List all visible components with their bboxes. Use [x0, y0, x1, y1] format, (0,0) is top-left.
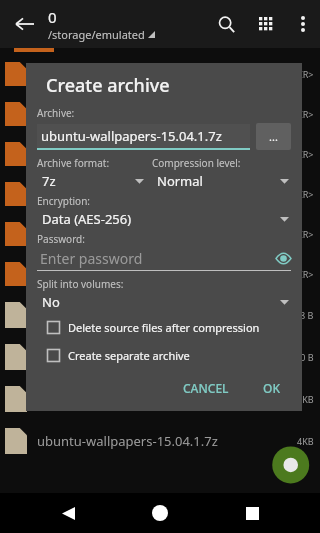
staticText: ubuntu-wallpapers-15.0.7z: [37, 390, 200, 408]
staticText: ubuntu-wallpapers-15.04.1.7z: [37, 432, 218, 450]
staticText: Normal: [157, 172, 203, 190]
staticText: Encryption:: [37, 194, 91, 208]
staticText: ...: [269, 129, 278, 144]
other: Show password: [276, 253, 291, 264]
button[interactable]: Create separate archive: [37, 341, 291, 369]
staticText: Password:: [37, 232, 85, 246]
button[interactable]: Search: [206, 4, 246, 44]
staticText: Delete source files after compression: [68, 320, 260, 335]
button[interactable]: <DIR>: [0, 134, 320, 174]
button[interactable]: <DIR>: [0, 174, 320, 214]
staticText: Archive format:: [37, 156, 110, 170]
staticText: 0: [48, 7, 57, 27]
staticText: Create archive: [46, 73, 170, 98]
button[interactable]: Compression level:: [152, 156, 291, 190]
button[interactable]: ubuntu-wallpapers-15.04.1.7z: [0, 420, 320, 462]
button[interactable]: More options: [286, 7, 320, 41]
staticText: CANCEL: [183, 380, 229, 396]
button[interactable]: Grid view: [246, 4, 286, 44]
button[interactable]: <DIR>: [0, 54, 320, 94]
staticText: <DIR>: [288, 268, 314, 280]
staticText: Archive:: [37, 106, 75, 120]
staticText: 8 B: [300, 309, 314, 321]
staticText: <DIR>: [288, 228, 314, 240]
button[interactable]: ubuntu-wallpapers-15.0.7z: [0, 378, 320, 420]
button[interactable]: Delete source files after compression: [37, 313, 291, 341]
button[interactable]: 8 B: [0, 294, 320, 336]
staticText: OK: [263, 380, 280, 396]
button[interactable]: Browse: [256, 123, 291, 150]
staticText: 7z: [42, 172, 56, 190]
staticText: 4KB: [297, 435, 314, 447]
staticText: 90 B: [295, 351, 314, 363]
staticText: ubuntu-wallpapers-15.04.1.7z: [41, 127, 222, 145]
button[interactable]: CANCEL: [175, 375, 237, 401]
button[interactable]: Archive format:: [37, 156, 146, 190]
staticText: <DIR>: [288, 108, 314, 120]
staticText: <DIR>: [288, 148, 314, 160]
staticText: /storage/emulated: [48, 27, 145, 42]
staticText: 7KB: [297, 393, 314, 405]
button[interactable]: <DIR>: [0, 94, 320, 134]
button[interactable]: Home: [136, 493, 184, 533]
staticText: <DIR>: [288, 68, 314, 80]
button[interactable]: Back: [44, 493, 92, 533]
button[interactable]: Back: [0, 0, 48, 48]
staticText: Create separate archive: [68, 348, 190, 363]
button[interactable]: <DIR>: [0, 214, 320, 254]
button[interactable]: Encryption:: [37, 194, 291, 228]
staticText: Split into volumes:: [37, 277, 124, 291]
staticText: Enter password: [40, 249, 143, 268]
button[interactable]: OK: [255, 375, 288, 401]
button[interactable]: 90 B: [0, 336, 320, 378]
staticText: Compression level:: [152, 156, 241, 170]
button[interactable]: Enter password: [37, 249, 291, 271]
button[interactable]: <DIR>: [0, 254, 320, 294]
staticText: <DIR>: [288, 188, 314, 200]
button[interactable]: Split into volumes:: [37, 277, 291, 311]
button[interactable]: Recents: [228, 493, 276, 533]
button[interactable]: ubuntu-wallpapers-15.04.1.7z: [37, 124, 250, 150]
staticText: Data (AES-256): [42, 210, 132, 228]
staticText: No: [42, 293, 60, 311]
